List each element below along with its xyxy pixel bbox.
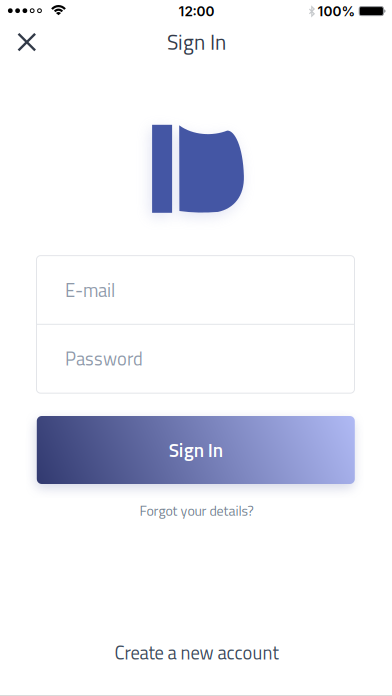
- staticText: Password: [65, 344, 143, 372]
- staticText: 100%: [317, 3, 355, 20]
- button[interactable]: Close: [9, 24, 45, 60]
- button[interactable]: E-mail: [37, 257, 353, 323]
- button[interactable]: Sign In: [37, 416, 355, 484]
- button[interactable]: Forgot your details?: [139, 500, 253, 521]
- staticText: 12:00: [178, 3, 214, 20]
- staticText: Forgot your details?: [139, 500, 253, 521]
- button[interactable]: Password: [37, 325, 353, 391]
- staticText: E-mail: [65, 276, 115, 304]
- staticText: Sign In: [169, 436, 223, 464]
- staticText: Sign In: [167, 26, 226, 58]
- staticText: Create a new account: [114, 638, 278, 666]
- button[interactable]: Create a new account: [114, 638, 278, 666]
